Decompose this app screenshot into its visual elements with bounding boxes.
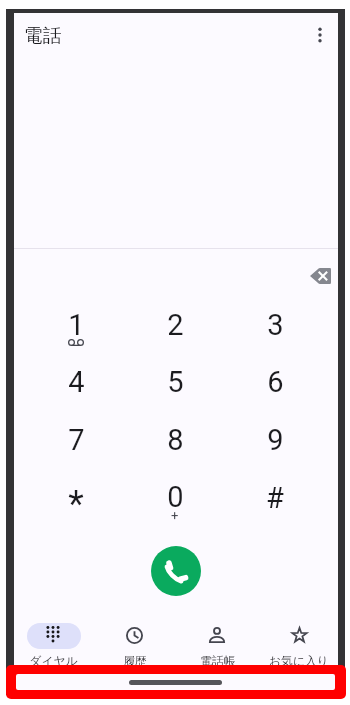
- staticText: 7: [68, 423, 85, 457]
- staticText: ダイヤル: [29, 654, 78, 669]
- button[interactable]: 0: [142, 469, 208, 525]
- button[interactable]: 2: [142, 297, 208, 353]
- button[interactable]: 履歴: [95, 619, 175, 667]
- staticText: 1: [68, 308, 85, 342]
- button[interactable]: 3: [242, 297, 308, 353]
- button[interactable]: お気に入り: [259, 619, 339, 667]
- button[interactable]: Call: [151, 546, 201, 596]
- staticText: 電話: [24, 24, 62, 48]
- button[interactable]: 電話: [15, 20, 165, 52]
- staticText: 9: [267, 423, 284, 457]
- button[interactable]: 4: [43, 354, 109, 410]
- button[interactable]: 電話帳: [178, 619, 258, 667]
- staticText: 4: [68, 365, 85, 399]
- button[interactable]: 9: [242, 412, 308, 468]
- button[interactable]: #: [242, 469, 308, 525]
- button[interactable]: 7: [43, 412, 109, 468]
- staticText: 電話帳: [200, 654, 236, 669]
- staticText: 8: [167, 423, 184, 457]
- button[interactable]: 8: [142, 412, 208, 468]
- staticText: 5: [167, 365, 184, 399]
- button[interactable]: ダイヤル: [13, 619, 93, 667]
- button[interactable]: More options: [300, 15, 340, 55]
- button[interactable]: 6: [242, 354, 308, 410]
- button[interactable]: *: [43, 469, 109, 525]
- button[interactable]: 1: [43, 297, 109, 353]
- staticText: 6: [267, 365, 284, 399]
- staticText: 履歴: [123, 654, 147, 669]
- staticText: お気に入り: [269, 654, 329, 669]
- staticText: +: [171, 508, 179, 523]
- staticText: 2: [167, 308, 184, 342]
- staticText: 3: [267, 308, 284, 342]
- button[interactable]: 5: [142, 354, 208, 410]
- staticText: *: [68, 483, 84, 525]
- staticText: 0: [167, 480, 184, 514]
- staticText: #: [266, 481, 284, 515]
- button[interactable]: Backspace: [301, 256, 341, 296]
